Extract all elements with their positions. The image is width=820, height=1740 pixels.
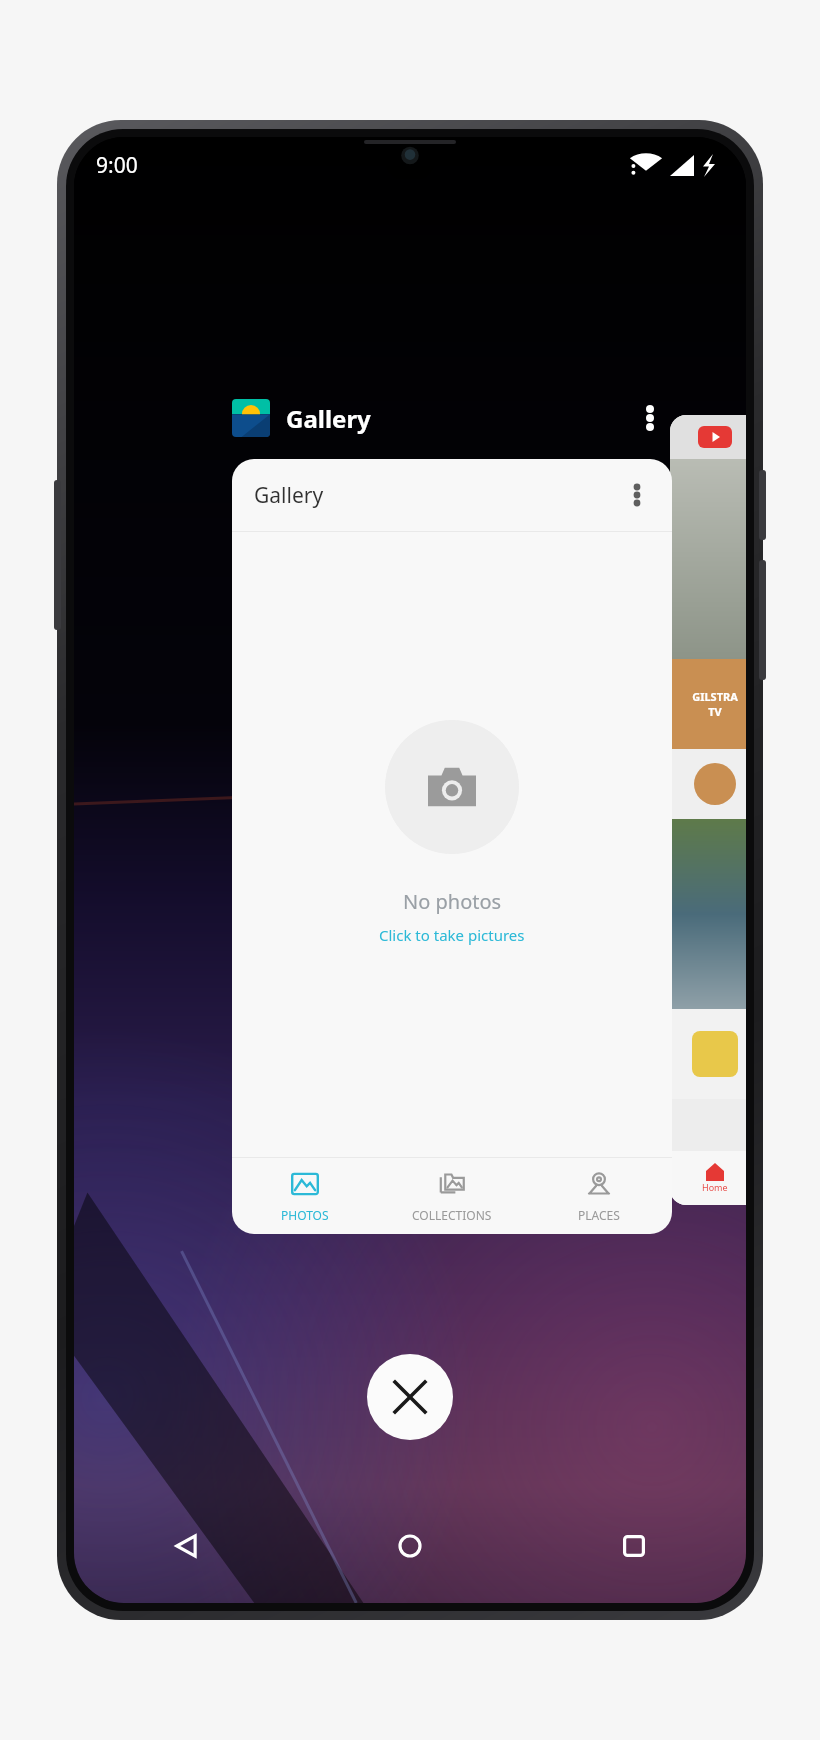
staticText: Home	[702, 1181, 728, 1193]
button[interactable]: Click to take pictures	[379, 925, 525, 945]
button[interactable]: Gallery	[232, 459, 672, 1234]
button[interactable]: GILSTRA TV	[670, 415, 746, 1205]
staticText: COLLECTIONS	[412, 1207, 492, 1223]
staticText: 9:00	[96, 151, 138, 180]
button[interactable]: COLLECTIONS	[378, 1158, 525, 1234]
button[interactable]: Gallery menu	[616, 474, 658, 516]
button[interactable]: Recent apps	[522, 1507, 746, 1585]
staticText: Click to take pictures	[379, 925, 525, 945]
button[interactable]: Clear all recent apps	[367, 1354, 453, 1440]
staticText: PLACES	[578, 1207, 620, 1223]
button[interactable]: Home	[298, 1507, 522, 1585]
staticText: Gallery	[254, 481, 324, 510]
button[interactable]: PHOTOS	[232, 1158, 378, 1234]
staticText: Gallery	[286, 402, 371, 435]
button[interactable]: More options	[628, 396, 672, 440]
staticText: GILSTRA TV	[692, 689, 738, 719]
button[interactable]: Gallery	[232, 387, 672, 449]
staticText: PHOTOS	[281, 1207, 329, 1223]
staticText: No photos	[403, 888, 502, 915]
button[interactable]: Back	[74, 1507, 298, 1585]
button[interactable]: Take a picture	[385, 720, 519, 854]
button[interactable]: PLACES	[525, 1158, 672, 1234]
